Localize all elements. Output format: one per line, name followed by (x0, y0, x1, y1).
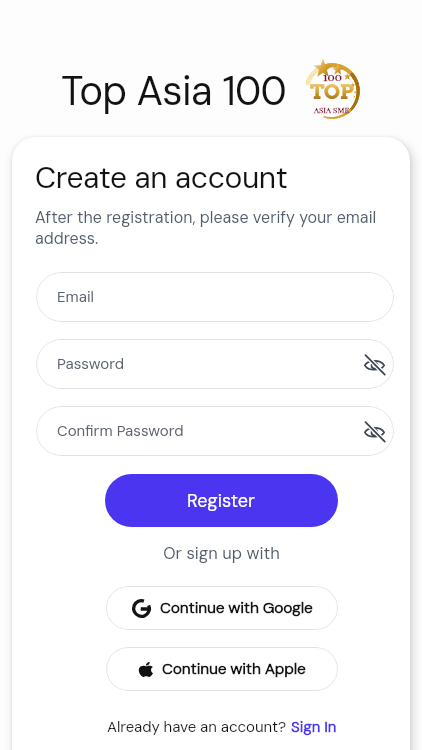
staticText: Top Asia 100 (61, 65, 287, 117)
staticText: 100 (323, 68, 342, 84)
button[interactable]: Show password (364, 354, 385, 375)
button[interactable]: Email (36, 272, 394, 322)
button[interactable]: Show password (364, 421, 385, 442)
button[interactable]: Sign In (291, 717, 337, 737)
button[interactable]: Password (36, 339, 394, 389)
staticText: TOP (310, 79, 354, 104)
button[interactable]: Confirm Password (36, 406, 394, 456)
staticText: Register (187, 489, 256, 512)
button[interactable]: Register (105, 474, 338, 527)
staticText: Continue with Google (160, 598, 313, 618)
staticText: Already have an account? (107, 717, 291, 737)
staticText: Continue with Apple (162, 659, 306, 679)
staticText: Or sign up with (33, 543, 410, 564)
staticText: After the registration, please verify yo… (35, 207, 396, 249)
button[interactable]: Continue with Google (106, 586, 338, 630)
staticText: Email (57, 287, 385, 307)
staticText: Sign In (291, 717, 337, 737)
staticText: Password (57, 354, 364, 374)
staticText: ASIA SME (314, 104, 350, 115)
staticText: Confirm Password (57, 421, 364, 441)
button[interactable]: Continue with Apple (106, 647, 338, 691)
staticText: Create an account (35, 158, 288, 197)
